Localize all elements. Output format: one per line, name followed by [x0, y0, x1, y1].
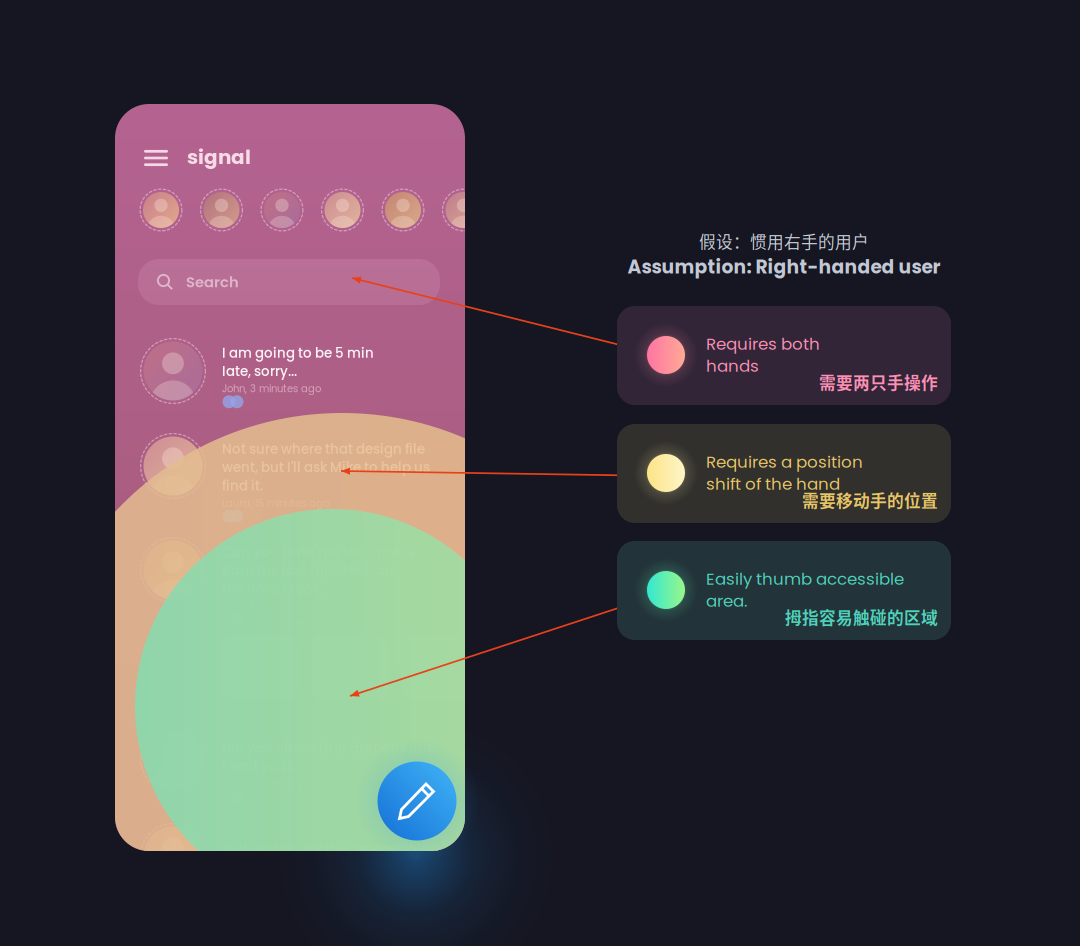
staticText: Can you send me the photos: [222, 543, 416, 561]
button[interactable]: Menu: [144, 150, 168, 166]
staticText: Still waiting for the new art thing: [222, 840, 439, 858]
staticText: went, but I'll ask Mike to help us: [222, 458, 430, 477]
staticText: area.: [706, 589, 748, 613]
button[interactable]: Still waiting for the new art thing: [115, 104, 465, 851]
button[interactable]: Search: [138, 259, 440, 305]
button[interactable]: Story: [321, 188, 364, 231]
button[interactable]: Can you send me the photos: [115, 104, 465, 851]
button[interactable]: Story: [442, 188, 485, 231]
staticText: Easily thumb accessible: [706, 567, 904, 591]
staticText: 需要两只手操作: [819, 370, 938, 394]
staticText: Not sure where that design file: [222, 440, 425, 458]
button[interactable]: Not sure where that design file: [115, 104, 465, 851]
staticText: 拇指容易触碰的区域: [785, 605, 938, 629]
button[interactable]: Story: [381, 188, 424, 231]
staticText: signal: [187, 143, 251, 171]
staticText: Did you check that dropbox link: [222, 739, 434, 757]
staticText: Assumption: Right-handed user: [627, 254, 940, 280]
button[interactable]: Did you check that dropbox link: [115, 104, 465, 851]
button[interactable]: Story: [139, 188, 182, 231]
staticText: from the last trip? Here are: [222, 561, 398, 580]
staticText: 假设：惯用右手的用户: [699, 229, 869, 253]
staticText: 需要移动手的位置: [802, 488, 938, 512]
staticText: Laura, 15 minutes ago: [222, 496, 329, 510]
button[interactable]: Requires both: [0, 0, 1080, 946]
button[interactable]: I am going to be 5 min: [115, 104, 465, 851]
staticText: shift of the hand: [706, 472, 840, 496]
staticText: John, 3 minutes ago: [222, 382, 321, 396]
staticText: find it.: [222, 476, 263, 495]
staticText: hands: [706, 354, 759, 378]
button[interactable]: Story: [260, 188, 303, 231]
staticText: Requires both: [706, 332, 820, 356]
staticText: Search: [186, 272, 239, 292]
button[interactable]: Compose: [344, 728, 490, 874]
button[interactable]: Easily thumb accessible: [0, 0, 1080, 946]
staticText: I am going to be 5 min: [222, 344, 374, 362]
button[interactable]: Story: [200, 188, 243, 231]
staticText: late, sorry...: [222, 362, 297, 381]
button[interactable]: Requires a position: [0, 0, 1080, 946]
staticText: Requires a position: [706, 450, 863, 474]
